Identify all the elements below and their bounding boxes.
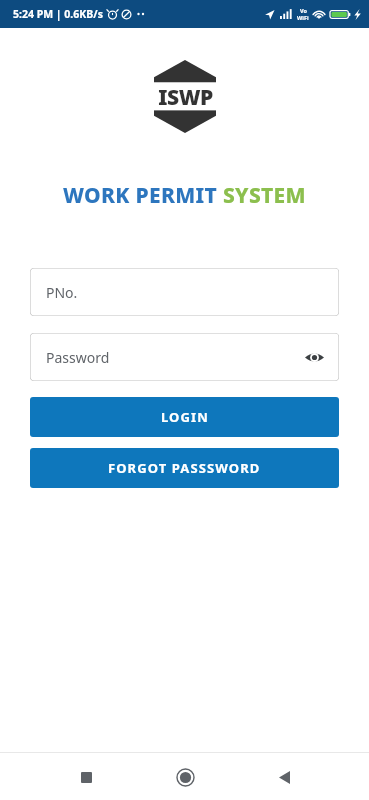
staticText: Vo: [300, 7, 307, 14]
button[interactable]: Recents: [66, 757, 106, 797]
staticText: LOGIN: [161, 408, 209, 426]
button[interactable]: Password: [30, 333, 339, 381]
button[interactable]: Home: [165, 757, 205, 797]
staticText: Password: [46, 348, 110, 367]
staticText: WORK PERMIT: [63, 181, 223, 210]
button[interactable]: PNo.: [30, 268, 339, 316]
button[interactable]: LOGIN: [30, 397, 339, 437]
staticText: SYSTEM: [223, 181, 306, 210]
staticText: ISWP: [158, 83, 213, 112]
staticText: 5:24 PM | 0.6KB/s: [13, 7, 103, 21]
button[interactable]: FORGOT PASSSWORD: [30, 448, 339, 488]
staticText: PNo.: [46, 283, 78, 302]
staticText: FORGOT PASSSWORD: [108, 459, 261, 477]
button[interactable]: Back: [264, 757, 304, 797]
button[interactable]: Show password: [299, 342, 329, 372]
staticText: WiFi: [297, 14, 309, 21]
